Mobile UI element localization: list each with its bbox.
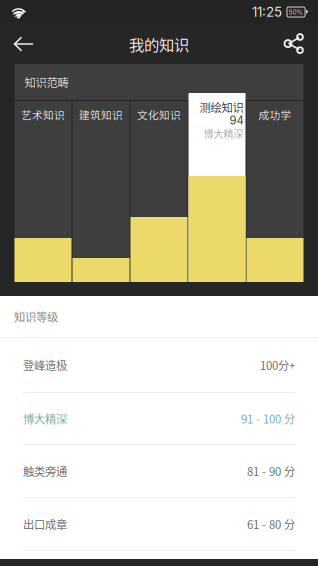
staticText: 触类旁通 [23,463,67,479]
staticText: 测绘知识 [199,99,243,115]
staticText: 知识范畴 [24,74,68,90]
staticText: 11:25 [252,4,282,20]
button[interactable]: Share [270,24,318,64]
staticText: 出口成章 [23,516,67,532]
staticText: 50% [288,8,303,16]
button[interactable]: 博大精深 [0,393,318,444]
staticText: 成功学 [258,107,291,122]
button[interactable]: 触类旁通 [0,445,318,497]
staticText: 91 - 100 分 [241,410,295,427]
button[interactable]: 测绘知识 [188,93,245,282]
button[interactable]: 登峰造极 [0,338,318,392]
staticText: 61 - 80 分 [247,516,295,532]
button[interactable]: 文化知识 [130,101,187,282]
button[interactable]: 艺术知识 [14,101,71,282]
staticText: 登峰造极 [23,357,67,373]
staticText: 艺术知识 [21,107,65,122]
staticText: 94 [229,114,243,127]
staticText: 81 - 90 分 [247,463,295,479]
button[interactable]: 出口成章 [0,498,318,550]
staticText: 知识等级 [14,308,58,325]
staticText: 我的知识 [129,33,189,55]
button[interactable]: 建筑知识 [72,101,129,282]
staticText: 100分+ [260,357,295,373]
staticText: 博大精深 [203,126,243,141]
staticText: 建筑知识 [79,107,123,122]
staticText: 文化知识 [137,107,181,122]
button[interactable]: Back [0,24,48,64]
staticText: 博大精深 [23,410,67,427]
button[interactable]: 成功学 [246,101,303,282]
